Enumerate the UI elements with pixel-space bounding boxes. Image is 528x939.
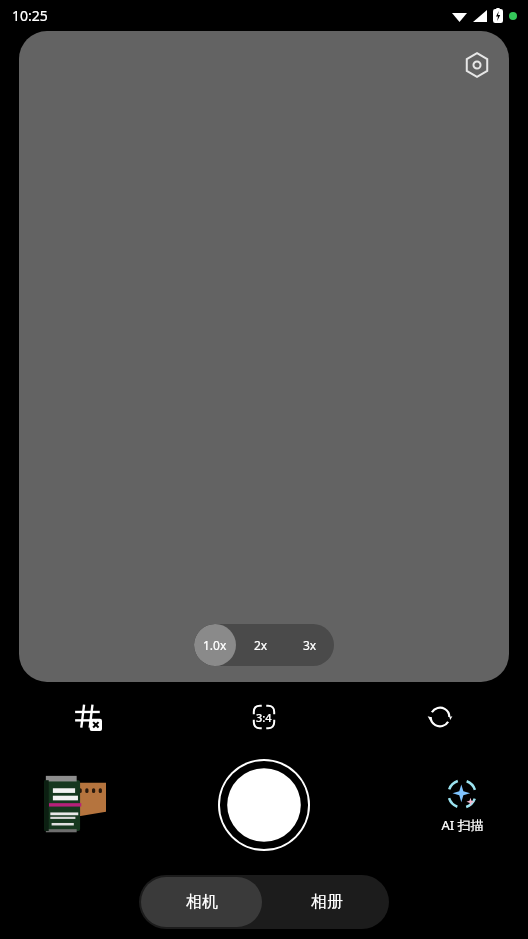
staticText: AI 扫描 xyxy=(441,816,484,834)
button[interactable]: Switch camera xyxy=(352,692,528,742)
button[interactable]: 相册 xyxy=(264,875,389,929)
staticText: 1.0x xyxy=(203,637,227,653)
button[interactable]: 3x xyxy=(285,624,334,666)
staticText: 相机 xyxy=(186,892,218,912)
button[interactable]: 相机 xyxy=(141,877,262,927)
staticText: 3x xyxy=(303,637,317,653)
staticText: 相册 xyxy=(311,892,343,912)
button[interactable]: 1.0x xyxy=(194,624,236,666)
staticText: 10:25 xyxy=(12,6,48,25)
staticText: 3:4 xyxy=(256,710,272,725)
button[interactable]: Aspect ratio 3:4 xyxy=(176,692,352,742)
button[interactable]: Shutter xyxy=(218,759,310,851)
button[interactable]: AI 扫描 xyxy=(426,777,498,834)
staticText: 2x xyxy=(254,637,268,653)
button[interactable]: 2x xyxy=(236,624,285,666)
button[interactable]: Settings xyxy=(457,45,497,85)
button[interactable]: Grid off xyxy=(0,692,176,742)
button[interactable]: Film roll xyxy=(42,774,106,836)
